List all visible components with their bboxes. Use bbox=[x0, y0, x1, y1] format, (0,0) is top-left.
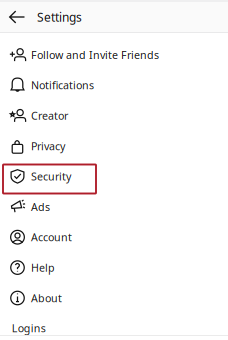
staticText: Follow and Invite Friends bbox=[31, 48, 159, 62]
staticText: Ads bbox=[31, 200, 50, 214]
button[interactable]: Help bbox=[0, 252, 228, 283]
button[interactable]: Ads bbox=[0, 192, 228, 222]
staticText: Logins bbox=[12, 321, 46, 335]
staticText: Help bbox=[31, 260, 55, 275]
button[interactable]: Privacy bbox=[0, 131, 228, 161]
staticText: About bbox=[31, 291, 62, 305]
staticText: Privacy bbox=[31, 139, 65, 153]
button[interactable]: Security bbox=[0, 161, 228, 192]
staticText: Settings bbox=[37, 9, 82, 25]
button[interactable]: Follow and Invite Friends bbox=[0, 40, 228, 70]
button[interactable]: Creator bbox=[0, 100, 228, 131]
staticText: Notifications bbox=[31, 78, 94, 92]
button[interactable]: Back bbox=[5, 2, 29, 32]
button[interactable]: About bbox=[0, 283, 228, 313]
staticText: Account bbox=[31, 230, 72, 244]
button[interactable]: Notifications bbox=[0, 70, 228, 100]
staticText: Creator bbox=[31, 108, 68, 123]
staticText: Security bbox=[31, 169, 71, 183]
button[interactable]: Account bbox=[0, 222, 228, 252]
